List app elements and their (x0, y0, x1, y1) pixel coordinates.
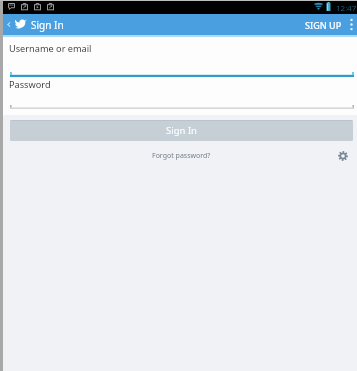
staticText: Password (9, 78, 51, 91)
staticText: SIGN UP (305, 19, 342, 31)
button[interactable]: Settings (334, 147, 352, 165)
button[interactable]: Forgot password? (146, 147, 217, 165)
staticText: Sign In (31, 18, 64, 32)
button[interactable]: SIGN UP (299, 14, 348, 35)
button[interactable]: More options (345, 14, 357, 35)
staticText: Sign In (166, 124, 197, 137)
button[interactable]: Back (2, 14, 14, 35)
staticText: Forgot password? (152, 151, 211, 161)
staticText: 12:47 (336, 2, 357, 13)
button[interactable]: Sign In (10, 120, 353, 141)
staticText: Username or email (9, 42, 92, 55)
